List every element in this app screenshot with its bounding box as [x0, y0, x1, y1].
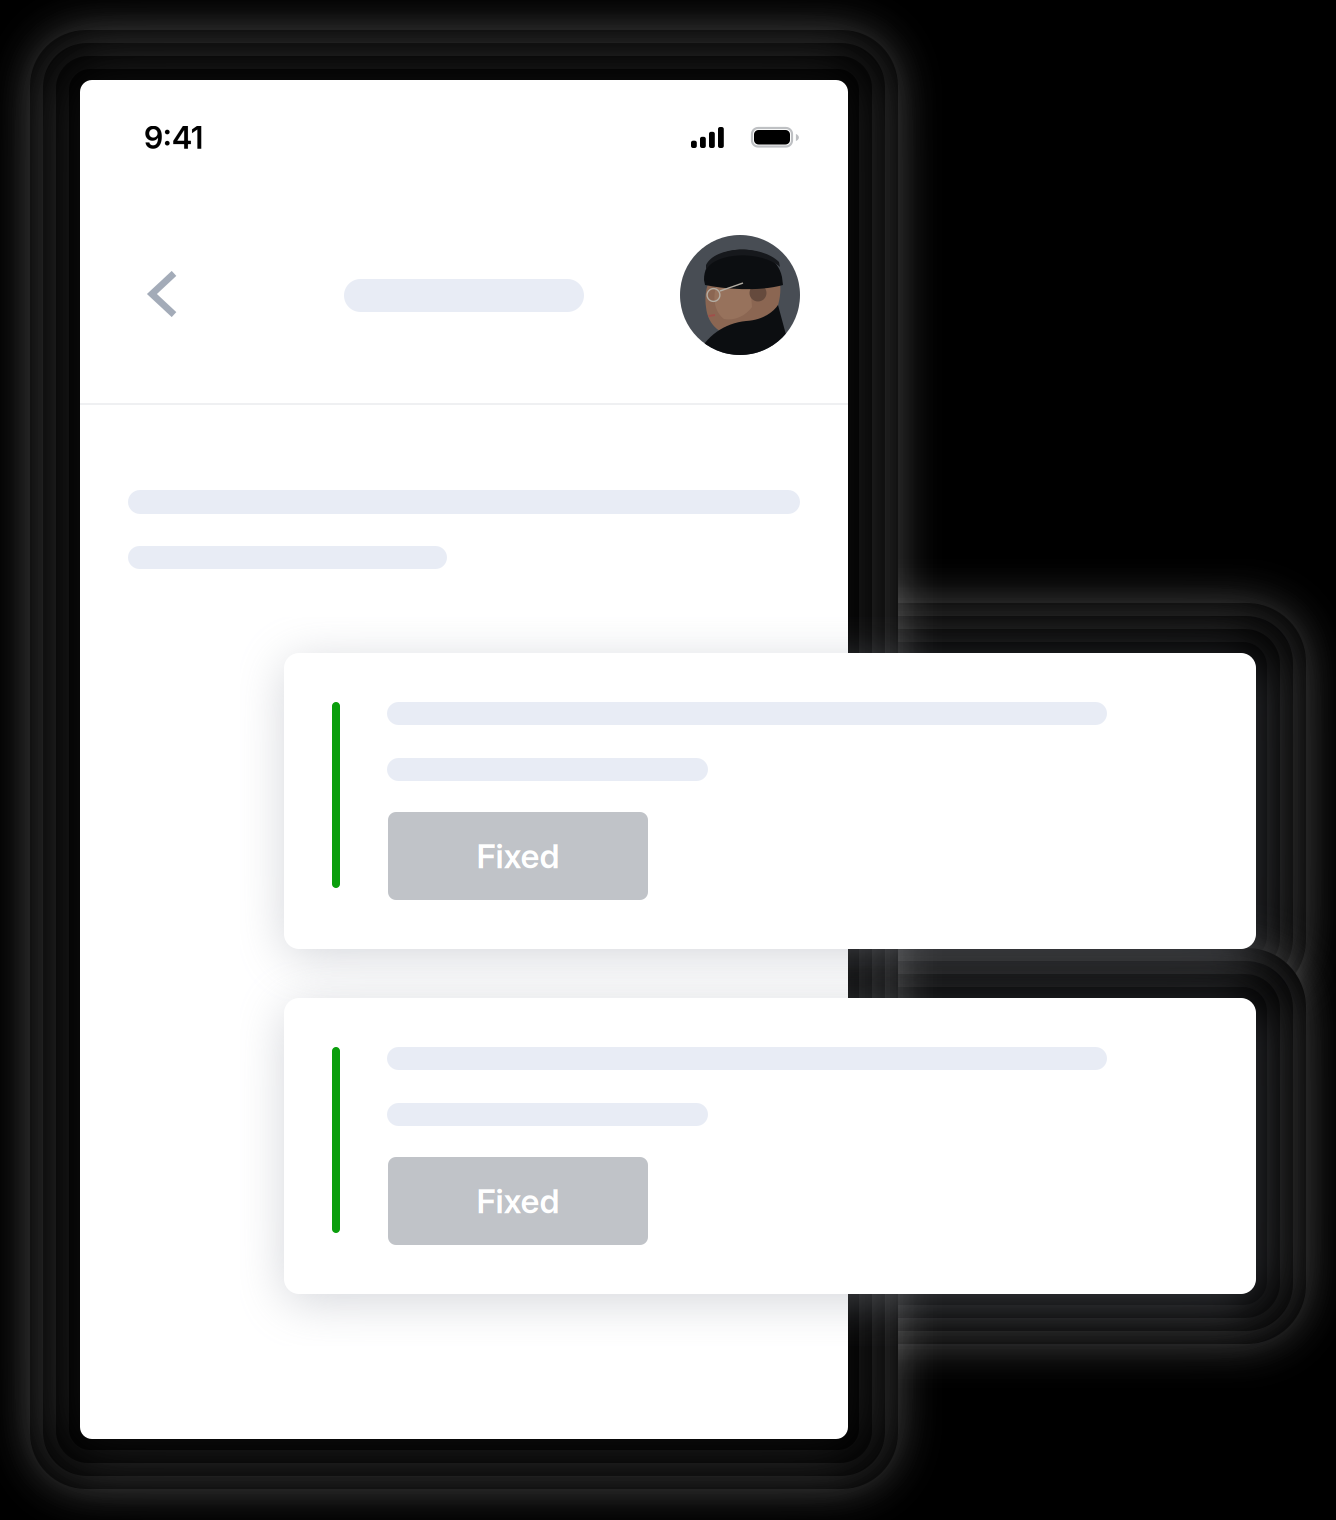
staticText: Fixed	[476, 836, 559, 876]
staticText: 9:41	[144, 119, 203, 156]
button[interactable]: Fixed	[388, 812, 648, 900]
button[interactable]: Back	[125, 252, 201, 336]
staticText: Fixed	[476, 1181, 559, 1221]
button[interactable]: Fixed	[388, 1157, 648, 1245]
button[interactable]: Profile	[680, 235, 800, 355]
